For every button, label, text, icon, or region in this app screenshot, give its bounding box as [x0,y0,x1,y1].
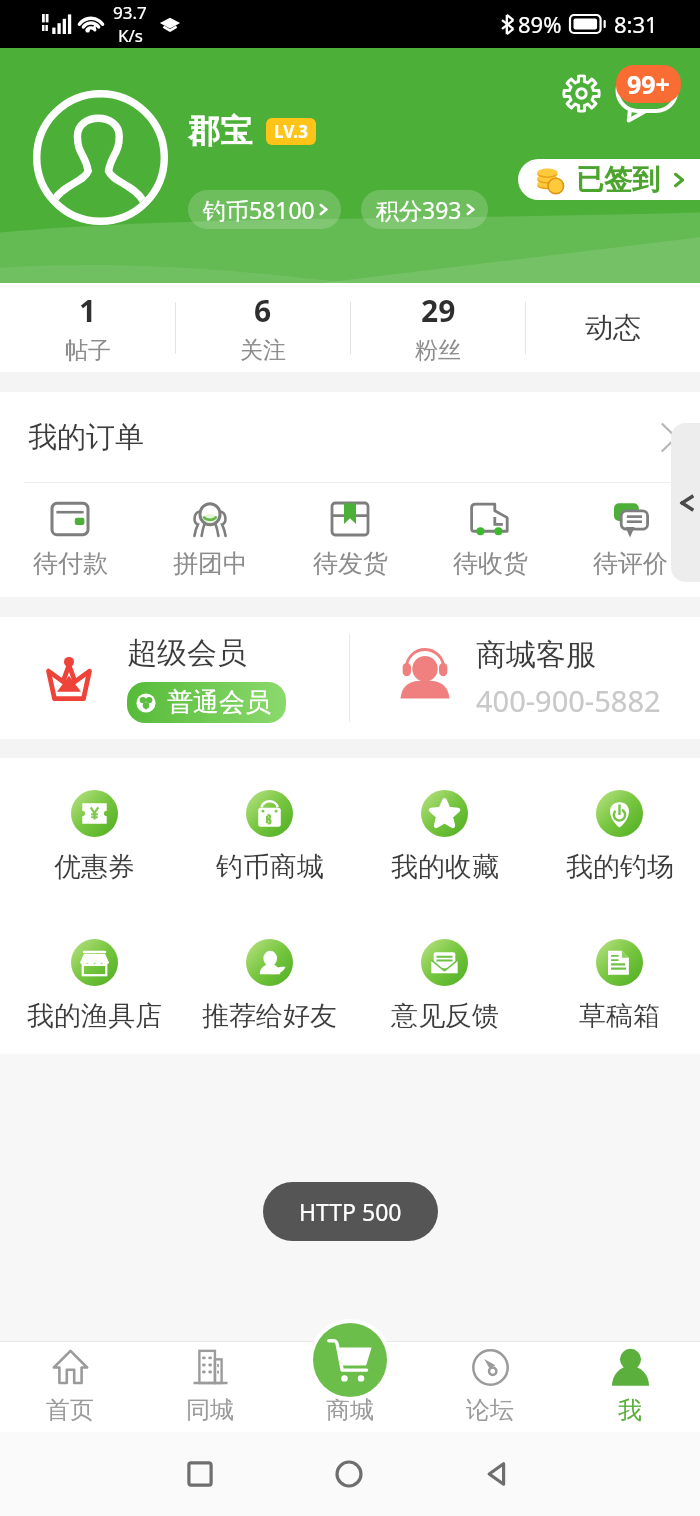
staticText: 我的订单 [28,419,144,456]
button[interactable]: 1 [0,283,175,372]
button[interactable]: 待评价 [560,483,700,597]
staticText: 待付款 [33,548,108,579]
staticText: LV.3 [274,120,308,143]
staticText: 93.7 [113,1,147,24]
button[interactable]: Back [467,1444,527,1504]
staticText: 积分393 [376,194,462,225]
button[interactable]: 拼团中 [140,483,280,597]
button[interactable]: Home [319,1444,379,1504]
staticText: 我 [618,1395,642,1425]
staticText: 动态 [585,310,641,345]
button[interactable]: 我的订单 [0,392,700,482]
button[interactable]: 29 [351,283,525,372]
staticText: 400-900-5882 [476,681,661,720]
staticText: 我的渔具店 [27,999,162,1033]
staticText: 草稿箱 [579,999,660,1033]
staticText: 拼团中 [173,548,248,579]
staticText: 同城 [186,1395,234,1425]
staticText: 待发货 [313,548,388,579]
button[interactable]: 设置 [561,73,602,114]
button[interactable]: 同城 [140,1341,280,1432]
staticText: 我的收藏 [391,850,499,884]
button[interactable]: 待收货 [420,483,560,597]
staticText: 推荐给好友 [202,999,337,1033]
staticText: 99+ [627,67,670,101]
staticText: 超级会员 [127,634,247,672]
button[interactable]: 动态 [526,283,700,372]
button[interactable]: 已签到 [518,159,700,200]
staticText: 优惠券 [54,850,135,884]
button[interactable]: 我的钓场 [532,790,700,884]
staticText: 89% [518,9,562,39]
button[interactable]: 钓币58100 [188,190,341,229]
button[interactable]: 待付款 [0,483,140,597]
button[interactable]: 首页 [0,1341,140,1432]
button[interactable]: 商城 [280,1341,420,1432]
staticText: 钓币商城 [216,850,324,884]
staticText: 商城客服 [476,636,596,674]
button[interactable]: 钓币商城 [182,790,357,884]
staticText: K/s [118,24,143,47]
staticText: 商城 [326,1395,374,1425]
staticText: 关注 [240,336,286,365]
button[interactable]: 推荐给好友 [182,939,357,1033]
staticText: 我的钓场 [566,850,674,884]
button[interactable]: 我的收藏 [357,790,532,884]
button[interactable]: 优惠券 [7,790,182,884]
button[interactable]: 6 [176,283,350,372]
button[interactable]: 消息 [614,65,684,121]
staticText: 6 [254,290,272,331]
staticText: 郡宝 [188,111,252,151]
staticText: 1 [79,290,97,331]
button[interactable]: 我的渔具店 [7,939,182,1033]
staticText: 已签到 [576,162,660,197]
staticText: 意见反馈 [391,999,499,1033]
button[interactable]: 论坛 [420,1341,560,1432]
button[interactable]: Recents [170,1444,230,1504]
button[interactable]: 超级会员 [0,617,349,739]
staticText: 粉丝 [415,336,461,365]
button[interactable]: 草稿箱 [532,939,700,1033]
staticText: 钓币58100 [203,194,315,225]
button[interactable]: 商城 [313,1323,387,1397]
button[interactable]: 商城客服 [350,617,700,739]
staticText: 帖子 [65,336,111,365]
button[interactable]: 我 [560,1341,700,1432]
staticText: 普通会员 [167,686,271,719]
staticText: 首页 [46,1395,94,1425]
staticText: HTTP 500 [299,1196,402,1227]
button[interactable]: 展开 [671,423,700,582]
staticText: 29 [421,290,456,331]
button[interactable]: 积分393 [361,190,488,229]
staticText: 论坛 [466,1395,514,1425]
button[interactable]: 意见反馈 [357,939,532,1033]
staticText: 待评价 [593,548,668,579]
staticText: 8:31 [614,9,658,39]
staticText: 待收货 [453,548,528,579]
button[interactable]: 待发货 [280,483,420,597]
